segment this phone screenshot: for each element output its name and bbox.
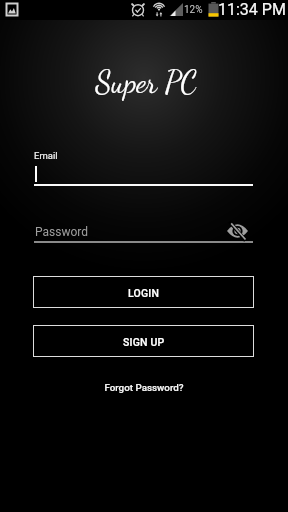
staticText: Forgot Password? <box>94 382 194 393</box>
button[interactable] <box>222 218 252 244</box>
button[interactable]: LOGIN <box>33 276 254 308</box>
staticText: 12% <box>184 4 214 16</box>
staticText: 11:34 PM <box>218 0 288 19</box>
staticText: Super PC <box>2 64 288 100</box>
button[interactable]: SIGN UP <box>33 325 254 357</box>
button[interactable]: Password <box>33 225 254 245</box>
staticText: Password <box>35 225 185 239</box>
button[interactable] <box>33 163 254 187</box>
staticText: LOGIN <box>128 287 160 299</box>
staticText: SIGN UP <box>123 336 165 348</box>
staticText: Email <box>34 150 154 161</box>
button[interactable]: Forgot Password? <box>94 376 194 396</box>
